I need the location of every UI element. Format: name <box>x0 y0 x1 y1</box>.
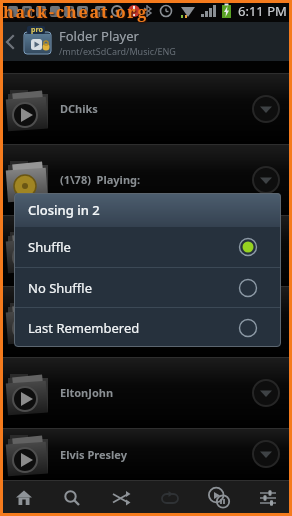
button[interactable] <box>252 379 280 407</box>
button[interactable]: EltonJohn <box>0 357 292 428</box>
button[interactable] <box>48 480 96 516</box>
button[interactable] <box>194 480 243 516</box>
button[interactable] <box>145 480 194 516</box>
staticText: No Shuffle <box>28 279 238 297</box>
staticText: hack-cheat.org <box>3 1 149 23</box>
button[interactable] <box>96 480 145 516</box>
staticText: Shuffle <box>28 238 238 256</box>
staticText: DChiks <box>60 101 98 116</box>
button[interactable]: Last Remembered <box>14 308 281 347</box>
staticText: Closing in 2 <box>28 201 100 219</box>
button[interactable] <box>252 440 280 468</box>
button[interactable] <box>252 308 280 336</box>
staticText: /mnt/extSdCard/Music/ENG <box>59 45 176 57</box>
button[interactable] <box>252 237 280 265</box>
button[interactable] <box>252 166 280 194</box>
button[interactable]: DChiks <box>0 73 292 144</box>
staticText: (1\78) Playing: <box>60 172 141 187</box>
button[interactable] <box>0 480 48 516</box>
button[interactable] <box>0 286 292 357</box>
button[interactable]: (1\78) Playing: <box>0 144 292 215</box>
staticText: 6:11 PM <box>238 2 287 20</box>
staticText: Elvis Presley <box>60 447 127 462</box>
button[interactable]: pro <box>0 22 292 61</box>
staticText: EltonJohn <box>60 385 114 400</box>
button[interactable]: Shuffle <box>14 227 281 267</box>
button[interactable] <box>252 95 280 123</box>
staticText: Folder Player <box>59 27 139 45</box>
staticText: Last Remembered <box>28 319 238 337</box>
button[interactable]: Elvis Presley <box>0 428 292 480</box>
staticText: pro <box>31 25 43 35</box>
button[interactable] <box>243 480 292 516</box>
button[interactable] <box>0 215 292 286</box>
button[interactable]: No Shuffle <box>14 268 281 307</box>
